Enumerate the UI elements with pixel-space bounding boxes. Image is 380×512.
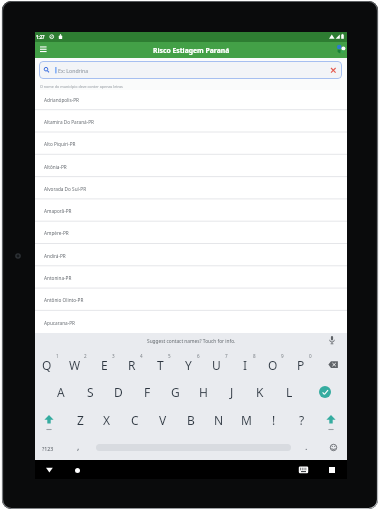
button[interactable]: Z — [60, 412, 100, 428]
staticText: 7 — [225, 353, 228, 359]
button[interactable]: D — [98, 384, 138, 400]
button[interactable]: P — [281, 357, 321, 373]
staticText: Risco Estiagem Paraná — [153, 46, 230, 55]
button[interactable]: ? — [282, 412, 322, 428]
button[interactable]: Antonina-PR — [35, 267, 347, 289]
button[interactable]: R — [112, 357, 152, 373]
button[interactable]: Ampère-PR — [35, 222, 347, 244]
staticText: L — [286, 384, 293, 400]
button[interactable] — [298, 466, 309, 474]
staticText: , — [77, 440, 80, 452]
staticText: A — [57, 384, 65, 400]
button[interactable] — [39, 61, 342, 79]
button[interactable]: J — [212, 384, 252, 400]
button[interactable] — [329, 443, 338, 452]
button[interactable]: C — [115, 412, 155, 428]
button[interactable]: G — [155, 384, 195, 400]
staticText: 0 — [309, 353, 312, 359]
button[interactable] — [335, 43, 347, 55]
button[interactable]: S — [70, 384, 110, 400]
button[interactable] — [44, 465, 55, 475]
button[interactable]: Amaporã-PR — [35, 200, 347, 222]
button[interactable]: , — [58, 438, 98, 454]
staticText: S — [87, 384, 94, 400]
button[interactable]: ! — [254, 412, 294, 428]
staticText: Apucarana-PR — [44, 320, 75, 326]
button[interactable]: F — [127, 384, 167, 400]
button[interactable]: X — [87, 412, 127, 428]
staticText: B — [187, 412, 195, 428]
button[interactable]: I — [225, 357, 265, 373]
staticText: Ex: Londrina — [58, 67, 89, 74]
staticText: Andirá-PR — [44, 253, 66, 259]
staticText: K — [256, 384, 264, 400]
button[interactable]: Antônio Olinto-PR — [35, 289, 347, 311]
staticText: N — [214, 412, 224, 428]
button[interactable]: ?123 — [28, 440, 68, 456]
button[interactable] — [43, 414, 55, 431]
button[interactable]: E — [84, 357, 124, 373]
button[interactable]: A — [41, 384, 81, 400]
staticText: W — [69, 357, 81, 373]
staticText: V — [159, 412, 167, 428]
button[interactable]: . — [286, 438, 326, 454]
button[interactable]: Altônia-PR — [35, 156, 347, 178]
staticText: 8 — [253, 353, 256, 359]
staticText: Antonina-PR — [44, 275, 72, 281]
staticText: 9 — [281, 353, 284, 359]
staticText: Y — [185, 357, 192, 373]
button[interactable] — [325, 414, 337, 431]
button[interactable]: N — [199, 412, 239, 428]
staticText: Ampère-PR — [44, 230, 69, 236]
staticText: Alvorada Do Sul-PR — [44, 186, 87, 192]
staticText: O — [268, 357, 278, 373]
staticText: 2 — [84, 353, 87, 359]
button[interactable] — [329, 66, 338, 75]
staticText: Adrianópolis-PR — [44, 97, 80, 103]
button[interactable]: M — [226, 412, 266, 428]
button[interactable]: Altamira Do Paraná-PR — [35, 111, 347, 133]
button[interactable]: Apucarana-PR — [35, 312, 347, 334]
staticText: Amaporã-PR — [44, 208, 72, 214]
button[interactable]: O — [253, 357, 293, 373]
staticText: H — [199, 384, 208, 400]
button[interactable]: Alto Piquiri-PR — [35, 133, 347, 155]
button[interactable]: H — [183, 384, 223, 400]
button[interactable] — [40, 46, 48, 54]
button[interactable]: Y — [168, 357, 208, 373]
staticText: Alto Piquiri-PR — [44, 141, 76, 147]
staticText: X — [103, 412, 111, 428]
staticText: O nome do município deve conter apenas l… — [40, 84, 123, 89]
staticText: U — [212, 357, 221, 373]
button[interactable] — [326, 360, 341, 370]
button[interactable]: U — [196, 357, 236, 373]
button[interactable]: Andirá-PR — [35, 245, 347, 267]
button[interactable]: V — [143, 412, 183, 428]
button[interactable] — [75, 468, 80, 473]
staticText: ? — [299, 412, 305, 428]
staticText: ! — [272, 412, 276, 428]
staticText: 3 — [112, 353, 115, 359]
staticText: . — [305, 440, 308, 452]
button[interactable]: Adrianópolis-PR — [35, 89, 347, 111]
button[interactable]: W — [55, 357, 95, 373]
button[interactable]: L — [269, 384, 309, 400]
button[interactable]: Q — [27, 357, 67, 373]
staticText: Suggest contact names? Touch for info. — [147, 338, 236, 345]
button[interactable]: B — [171, 412, 211, 428]
staticText: I — [243, 357, 248, 373]
button[interactable]: T — [140, 357, 180, 373]
staticText: Altônia-PR — [44, 164, 67, 170]
button[interactable]: K — [240, 384, 280, 400]
staticText: Z — [77, 412, 84, 428]
button[interactable]: Alvorada Do Sul-PR — [35, 178, 347, 200]
staticText: E — [101, 357, 108, 373]
staticText: 1:27 — [36, 34, 45, 40]
staticText: Antônio Olinto-PR — [44, 297, 84, 303]
button[interactable] — [319, 386, 331, 398]
staticText: 6 — [197, 353, 200, 359]
staticText: F — [144, 384, 151, 400]
staticText: R — [128, 357, 136, 373]
